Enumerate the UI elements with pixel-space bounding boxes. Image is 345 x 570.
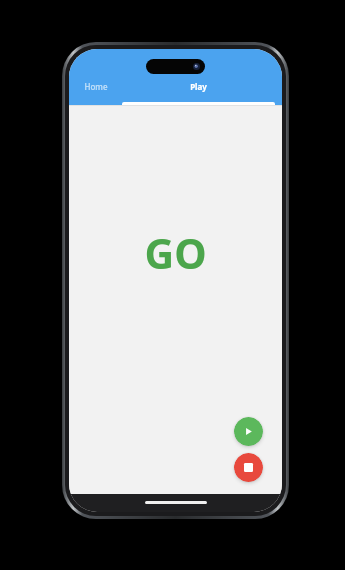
button[interactable]: Stop bbox=[234, 453, 263, 482]
staticText: Home bbox=[84, 81, 108, 92]
staticText: GO bbox=[144, 225, 207, 281]
button[interactable]: Play bbox=[115, 81, 282, 105]
staticText: Play bbox=[190, 81, 207, 92]
button[interactable]: Home bbox=[77, 81, 115, 105]
button[interactable]: Play bbox=[234, 417, 263, 446]
